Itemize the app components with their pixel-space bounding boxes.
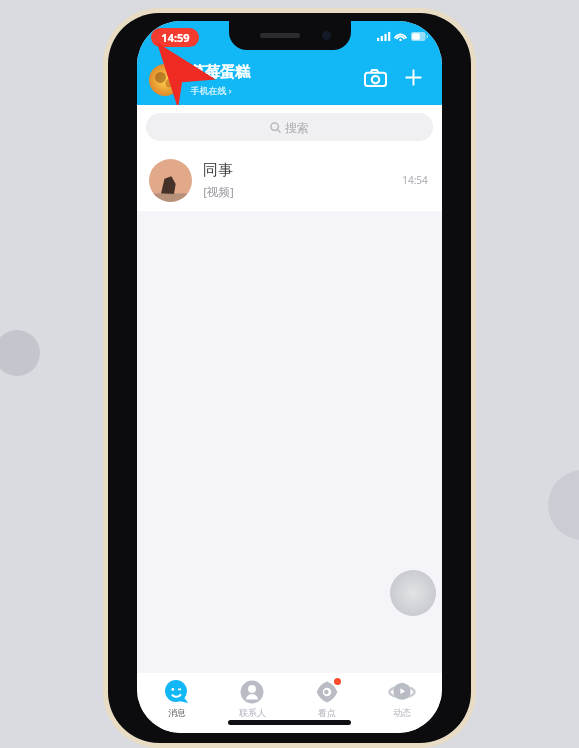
staticText: 14:54 [402, 173, 428, 187]
button[interactable]: 草莓蛋糕 [149, 63, 250, 96]
staticText: 同事 [203, 161, 233, 180]
button[interactable]: 看点 [292, 679, 362, 718]
staticText: 搜索 [285, 120, 309, 135]
button[interactable]: 搜索 [146, 113, 433, 141]
staticText: 消息 [168, 707, 186, 718]
button[interactable]: Camera [360, 62, 390, 92]
button[interactable]: Assistive touch [390, 570, 436, 616]
staticText: 看点 [318, 707, 336, 718]
staticText: 动态 [393, 707, 411, 718]
staticText: [视频] [203, 184, 234, 200]
button[interactable]: 消息 [142, 679, 212, 718]
staticText: 手机在线 › [190, 84, 232, 96]
staticText: 联系人 [239, 707, 266, 718]
button[interactable]: 联系人 [217, 679, 287, 718]
button[interactable]: 同事 [137, 149, 442, 211]
button[interactable]: Add [398, 62, 428, 92]
staticText: 14:59 [161, 30, 190, 45]
button[interactable]: 动态 [367, 679, 437, 718]
staticText: 草莓蛋糕 [190, 63, 250, 82]
